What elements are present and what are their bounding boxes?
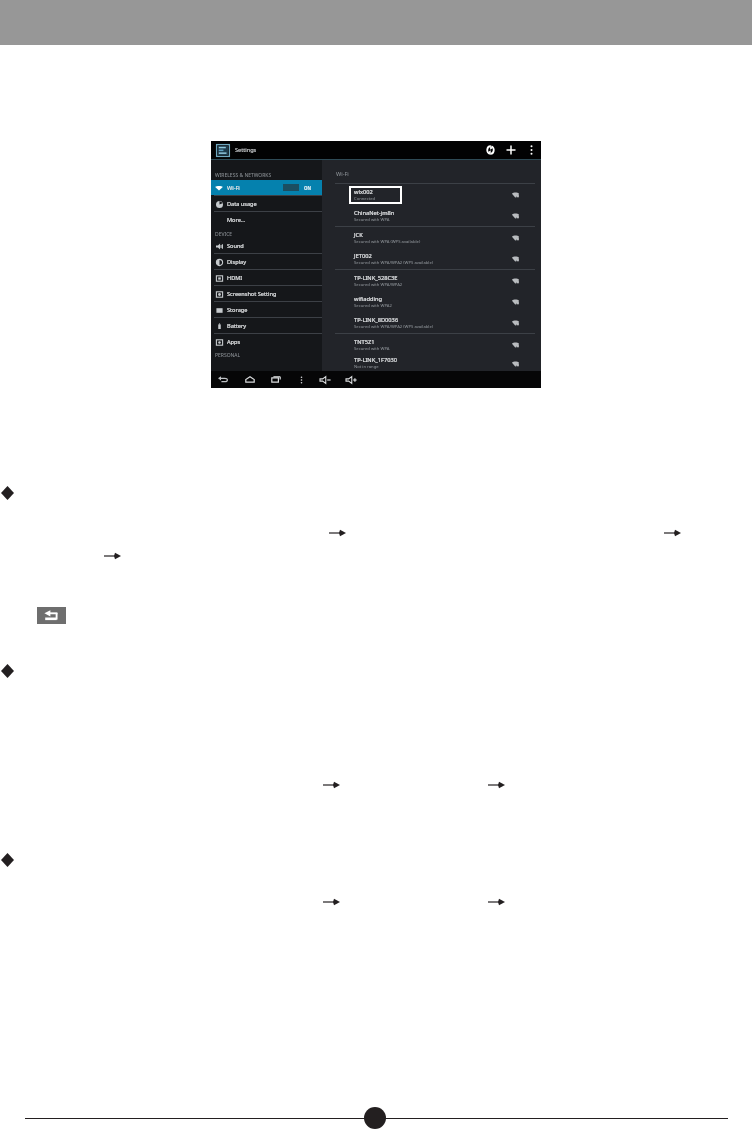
staticText: Data usage bbox=[227, 200, 257, 208]
staticText: TP-LINK_8D0036 bbox=[354, 316, 399, 324]
button[interactable]: Data usage bbox=[211, 196, 322, 211]
staticText: More... bbox=[227, 216, 246, 224]
staticText: Settings bbox=[235, 146, 257, 154]
staticText: Secured with WPA/WPA2 (WPS available) bbox=[354, 324, 434, 330]
staticText: Secured with WPA (WPS available) bbox=[354, 239, 421, 245]
button[interactable]: HDMI bbox=[211, 270, 322, 285]
staticText: Secured with WPA/WPA2 bbox=[354, 282, 403, 288]
button[interactable]: TP-LINK_1F7030 bbox=[322, 355, 541, 371]
button[interactable]: Volume up bbox=[344, 371, 360, 388]
button[interactable]: TNT5Z1 bbox=[322, 334, 541, 355]
staticText: JET002 bbox=[354, 252, 372, 260]
button[interactable]: Sound bbox=[211, 238, 322, 253]
staticText: Secured with WPA bbox=[354, 346, 390, 352]
staticText: Display bbox=[227, 258, 247, 266]
staticText: Secured with WPA2 bbox=[354, 303, 392, 309]
button[interactable]: TP-LINK_8D0036 bbox=[322, 312, 541, 333]
button[interactable]: Screenshot Setting bbox=[211, 286, 322, 301]
button[interactable]: Storage bbox=[211, 302, 322, 317]
staticText: ChinaNet-jm8n bbox=[354, 209, 395, 217]
staticText: TNT5Z1 bbox=[354, 338, 375, 346]
button[interactable]: JET002 bbox=[322, 248, 541, 269]
button[interactable]: Menu bbox=[293, 371, 309, 388]
staticText: PERSONAL bbox=[215, 352, 241, 359]
staticText: TP-LINK_528C3E bbox=[354, 274, 398, 282]
staticText: wifiadding bbox=[354, 295, 383, 303]
button[interactable]: Back bbox=[215, 371, 231, 388]
staticText: HDMI bbox=[227, 274, 243, 282]
staticText: Wi-Fi bbox=[336, 170, 349, 178]
button[interactable]: ChinaNet-jm8n bbox=[322, 205, 541, 226]
staticText: WIRELESS & NETWORKS bbox=[215, 172, 272, 179]
button[interactable]: wifiadding bbox=[322, 291, 541, 312]
staticText: Apps bbox=[227, 338, 241, 346]
button[interactable]: Wi-Fi bbox=[211, 180, 322, 195]
staticText: JCK bbox=[354, 231, 363, 239]
button[interactable]: Back bbox=[37, 607, 66, 624]
staticText: Wi-Fi bbox=[227, 184, 240, 192]
staticText: Not in range bbox=[354, 364, 379, 370]
staticText: Connected bbox=[354, 196, 376, 202]
staticText: Storage bbox=[227, 306, 248, 314]
button[interactable]: Battery bbox=[211, 318, 322, 333]
staticText: TP-LINK_1F7030 bbox=[354, 356, 397, 364]
button[interactable]: Add network bbox=[505, 144, 517, 156]
button[interactable]: Recents bbox=[268, 371, 284, 388]
staticText: Secured with WPA/WPA2 (WPS available) bbox=[354, 260, 434, 266]
button[interactable]: TP-LINK_528C3E bbox=[322, 270, 541, 291]
staticText: Sound bbox=[227, 242, 244, 250]
staticText: Screenshot Setting bbox=[227, 290, 277, 298]
button[interactable]: Apps bbox=[211, 334, 322, 349]
staticText: ON bbox=[304, 185, 312, 191]
button[interactable]: More options bbox=[526, 144, 536, 156]
button[interactable]: Scan bbox=[484, 144, 496, 156]
button[interactable]: Display bbox=[211, 254, 322, 269]
button[interactable]: Home bbox=[242, 371, 258, 388]
staticText: Secured with WPA bbox=[354, 217, 390, 223]
button[interactable]: Volume down bbox=[318, 371, 334, 388]
button[interactable]: JCK bbox=[322, 227, 541, 248]
staticText: wlx002 bbox=[354, 188, 373, 196]
staticText: Battery bbox=[227, 322, 247, 330]
button[interactable]: wlx002 bbox=[322, 184, 541, 205]
button[interactable]: Settings bbox=[216, 144, 230, 157]
staticText: DEVICE bbox=[215, 231, 233, 238]
button[interactable]: More... bbox=[211, 212, 322, 227]
